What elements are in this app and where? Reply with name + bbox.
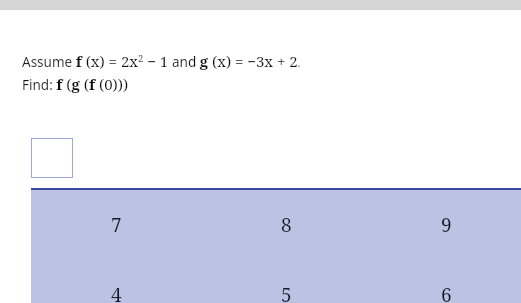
button[interactable]: Answer input field xyxy=(31,138,73,178)
button[interactable]: 7 xyxy=(31,190,201,260)
staticText: 7 xyxy=(111,212,122,238)
button[interactable]: 9 xyxy=(371,190,521,260)
staticText: 9 xyxy=(441,212,452,238)
button[interactable]: 5 xyxy=(201,260,371,303)
staticText: 5 xyxy=(281,282,292,303)
staticText: 8 xyxy=(281,212,292,238)
staticText: 6 xyxy=(441,282,452,303)
staticText: 4 xyxy=(111,282,122,303)
button[interactable]: 8 xyxy=(201,190,371,260)
button[interactable]: 4 xyxy=(31,260,201,303)
button[interactable]: 6 xyxy=(371,260,521,303)
staticText: Assume f (x) = 2x2 − 1 and g (x) = −3x +… xyxy=(22,51,301,71)
staticText: Find: f (g (f (0))) xyxy=(22,74,129,94)
